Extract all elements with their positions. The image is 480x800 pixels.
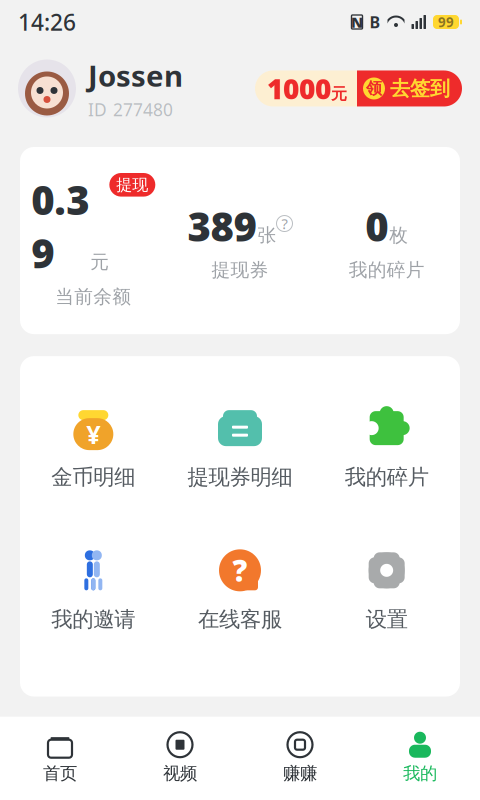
staticText: 赚赚	[283, 763, 317, 784]
button[interactable]: 赚赚	[240, 723, 360, 792]
staticText: 我的邀请	[51, 606, 135, 632]
staticText: 张	[257, 224, 276, 247]
staticText: 元	[90, 250, 109, 273]
staticText: B	[369, 11, 380, 33]
button[interactable]: 0	[313, 199, 460, 281]
staticText: 0	[365, 199, 388, 253]
staticText: 枚	[389, 224, 408, 247]
button[interactable]: 首页	[0, 723, 120, 792]
button[interactable]: 1000	[255, 70, 462, 106]
staticText: 我的	[403, 763, 437, 784]
button[interactable]: ¥	[20, 400, 167, 494]
button[interactable]: 设置	[313, 542, 460, 636]
staticText: 在线客服	[198, 606, 282, 632]
button[interactable]: 389	[167, 199, 313, 281]
staticText: 领	[366, 79, 382, 98]
staticText: Jossen	[88, 56, 183, 95]
staticText: 1000	[267, 70, 331, 107]
staticText: 首页	[43, 763, 77, 784]
staticText: 当前余额	[55, 285, 131, 308]
button[interactable]: 我的碎片	[313, 400, 460, 494]
staticText: 去签到	[390, 76, 450, 101]
staticText: 14:26	[18, 7, 76, 37]
button[interactable]: Profile photo	[18, 59, 76, 117]
staticText: 0.39	[31, 173, 89, 279]
staticText: ¥	[86, 417, 100, 451]
staticText: 提现	[116, 175, 148, 195]
button[interactable]: ?	[167, 542, 313, 636]
staticText: 金币明细	[51, 464, 135, 490]
staticText: 389	[187, 199, 256, 253]
button[interactable]: 我的邀请	[20, 542, 167, 636]
staticText: ?	[281, 214, 287, 233]
staticText: N	[351, 12, 363, 32]
staticText: 我的碎片	[349, 259, 425, 281]
staticText: 设置	[366, 606, 408, 632]
staticText: 99	[438, 13, 454, 31]
staticText: 视频	[163, 763, 197, 784]
staticText: ID	[88, 98, 107, 121]
staticText: 元	[331, 84, 347, 104]
staticText: 277480	[113, 98, 173, 121]
staticText: 提现券	[211, 259, 268, 281]
staticText: 我的碎片	[345, 464, 429, 490]
button[interactable]: 0.39	[20, 173, 167, 308]
button[interactable]: 提现券明细	[167, 400, 313, 494]
staticText: ?	[232, 551, 247, 590]
button[interactable]: 视频	[120, 723, 240, 792]
button[interactable]: 我的	[360, 723, 480, 792]
staticText: 提现券明细	[187, 464, 292, 490]
